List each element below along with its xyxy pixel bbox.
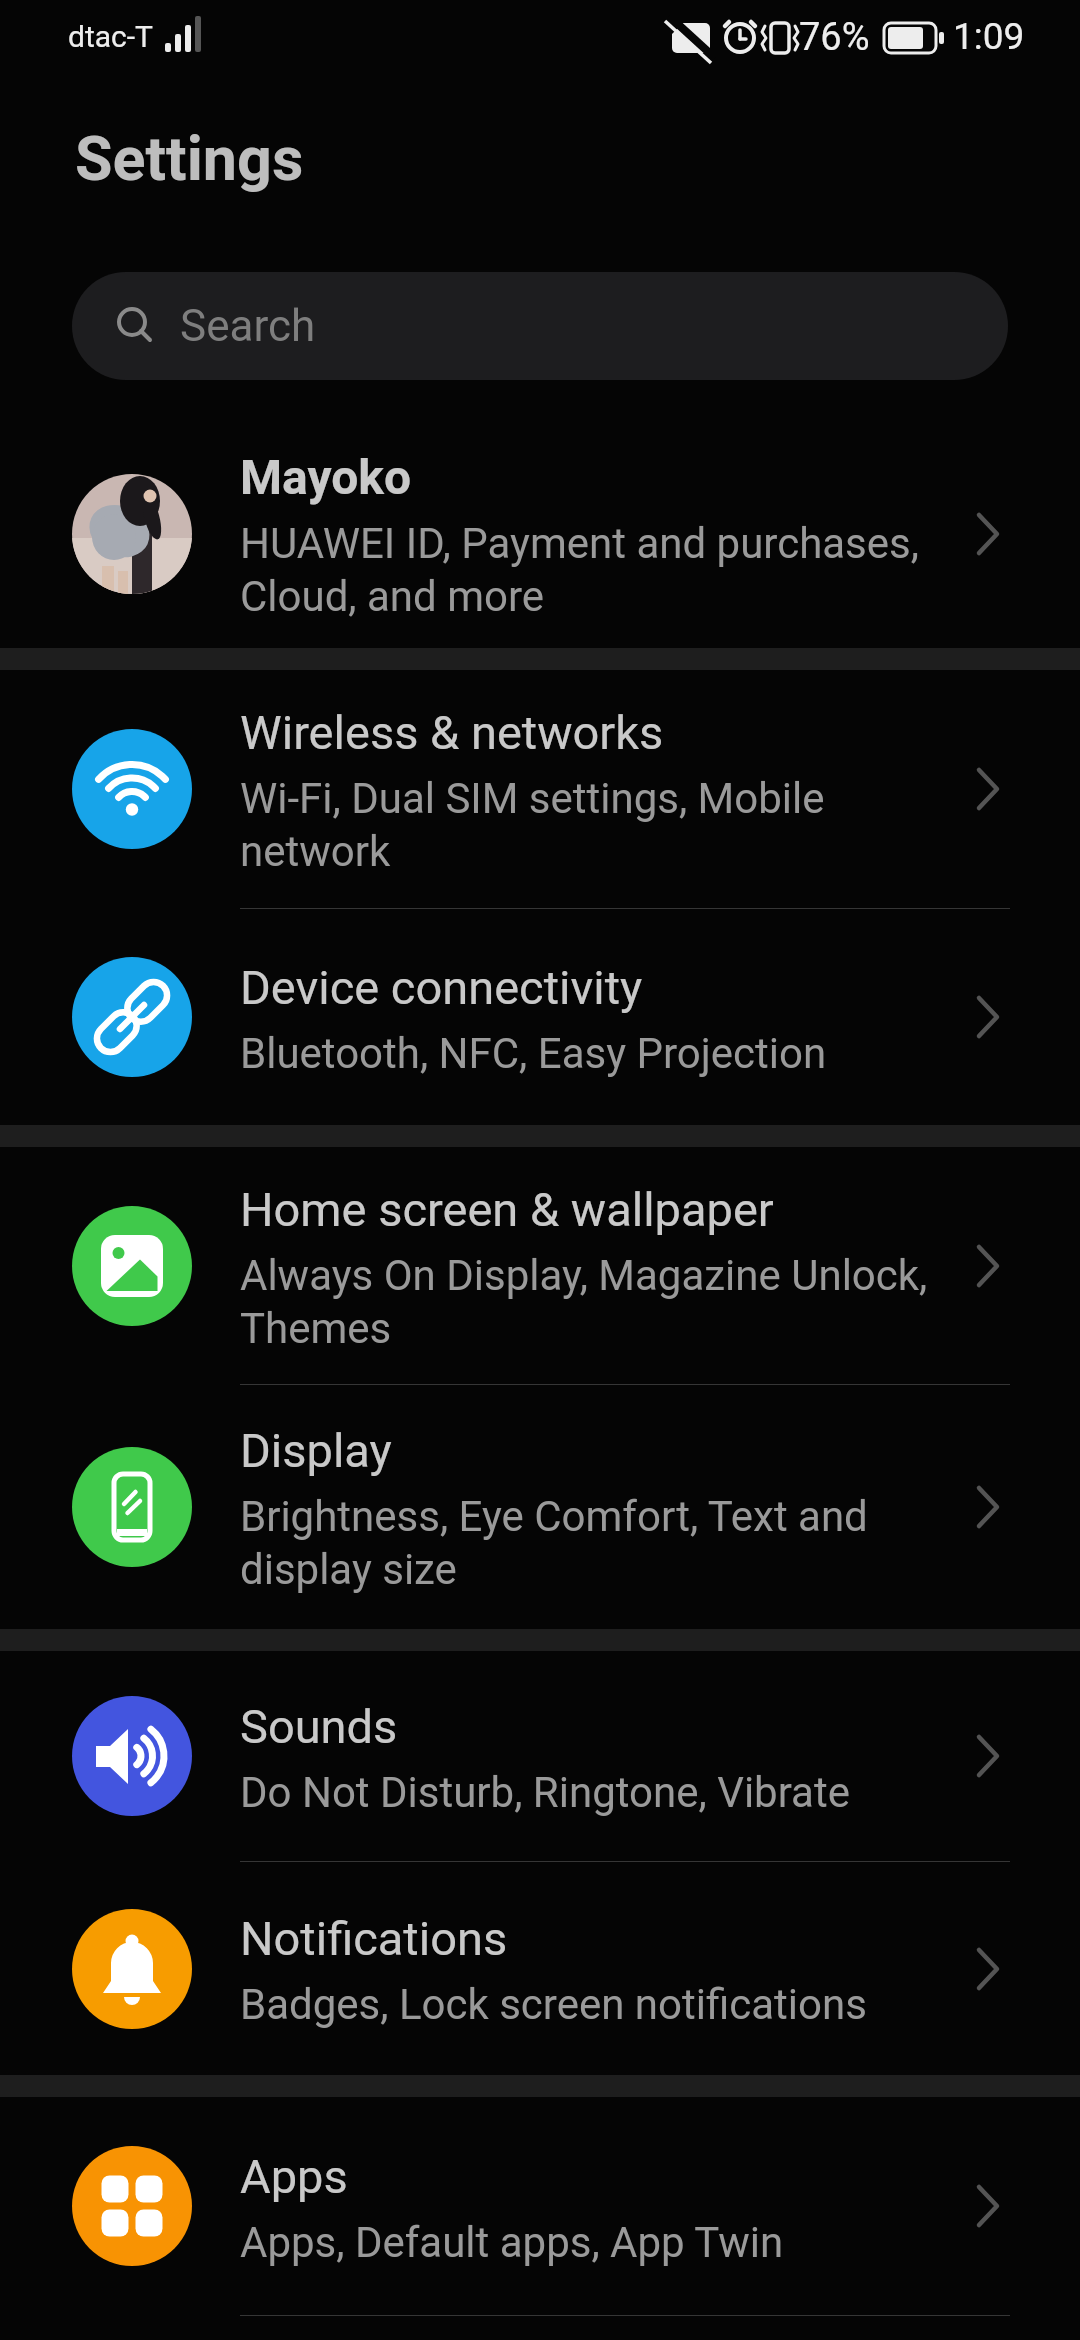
staticText: Sounds <box>240 1699 398 1754</box>
staticText: network <box>240 827 391 876</box>
staticText: Themes <box>240 1304 392 1353</box>
staticText: Always On Display, Magazine Unlock, <box>240 1251 928 1300</box>
button[interactable]: Notifications <box>0 1862 1080 2075</box>
staticText: Wireless & networks <box>240 705 664 760</box>
button[interactable]: Mayoko <box>0 420 1080 648</box>
button[interactable]: Home screen & wallpaper <box>0 1147 1080 1384</box>
button[interactable]: Sounds <box>0 1651 1080 1861</box>
staticText: Mayoko <box>240 449 412 505</box>
button[interactable]: Device connectivity <box>0 909 1080 1125</box>
staticText: Wi-Fi, Dual SIM settings, Mobile <box>240 774 825 823</box>
staticText: 1:09 <box>953 15 1025 58</box>
button[interactable]: Apps <box>0 2097 1080 2315</box>
staticText: Search <box>180 300 316 352</box>
staticText: Badges, Lock screen notifications <box>240 1980 867 2029</box>
staticText: display size <box>240 1545 457 1594</box>
staticText: Notifications <box>240 1911 508 1966</box>
button[interactable]: Wireless & networks <box>0 670 1080 908</box>
staticText: Apps <box>240 2149 348 2204</box>
button[interactable]: Search <box>72 272 1008 380</box>
staticText: Apps, Default apps, App Twin <box>240 2218 784 2267</box>
staticText: 76% <box>799 15 870 60</box>
button[interactable]: Display <box>0 1385 1080 1629</box>
staticText: Settings <box>75 123 304 194</box>
staticText: HUAWEI ID, Payment and purchases, <box>240 519 919 568</box>
staticText: Do Not Disturb, Ringtone, Vibrate <box>240 1768 850 1817</box>
staticText: Brightness, Eye Comfort, Text and <box>240 1492 868 1541</box>
staticText: dtac-T <box>68 19 153 54</box>
staticText: Bluetooth, NFC, Easy Projection <box>240 1029 827 1078</box>
staticText: Display <box>240 1423 392 1478</box>
staticText: Cloud, and more <box>240 572 545 621</box>
staticText: Home screen & wallpaper <box>240 1182 774 1237</box>
staticText: Device connectivity <box>240 960 643 1015</box>
